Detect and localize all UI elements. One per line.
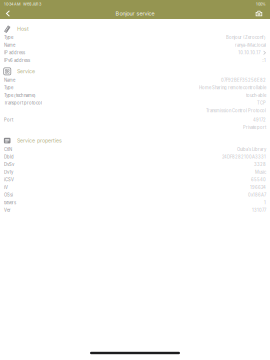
staticText: Port bbox=[4, 117, 13, 122]
staticText: Ver bbox=[4, 208, 11, 213]
staticText: DbId bbox=[4, 154, 14, 159]
staticText: Home Sharing remote controllable bbox=[199, 85, 266, 90]
staticText: Service properties bbox=[17, 137, 62, 144]
staticText: ::1 bbox=[262, 58, 266, 63]
staticText: Bonjour service bbox=[115, 10, 154, 17]
staticText: 131077 bbox=[252, 208, 266, 213]
staticText: ranya-iMac.local bbox=[235, 43, 266, 48]
staticText: TCP bbox=[257, 100, 266, 106]
staticText: Ouiba's Library bbox=[237, 147, 266, 152]
staticText: Name bbox=[4, 43, 15, 48]
staticText: touch-able bbox=[246, 93, 266, 98]
button[interactable]: IP address bbox=[0, 49, 270, 56]
staticText: Transport protocol bbox=[4, 100, 42, 106]
staticText: DvTy bbox=[4, 170, 13, 175]
staticText: 10:34 AM Wed Jun 3 bbox=[4, 2, 41, 6]
button[interactable]: Scan for services bbox=[254, 8, 264, 18]
staticText: 1 bbox=[264, 200, 266, 205]
staticText: Type (tech name) bbox=[4, 93, 36, 98]
staticText: OSsi bbox=[4, 192, 13, 198]
staticText: Host bbox=[17, 25, 29, 32]
staticText: 49172 bbox=[253, 117, 266, 122]
staticText: 10.10.10.17 bbox=[238, 50, 260, 55]
staticText: 3328 bbox=[254, 162, 266, 167]
staticText: 0x186A7 bbox=[248, 192, 266, 198]
staticText: 100% bbox=[256, 2, 266, 6]
staticText: Type bbox=[4, 35, 13, 40]
staticText: iCSV bbox=[4, 177, 14, 182]
staticText: Transmission Control Protocol bbox=[206, 108, 266, 113]
button[interactable]: Back bbox=[3, 8, 13, 18]
staticText: 07F92BEF35256E82 bbox=[221, 78, 266, 83]
staticText: Service bbox=[17, 68, 35, 75]
staticText: Private port bbox=[243, 125, 266, 130]
staticText: 65540 bbox=[251, 177, 266, 182]
staticText: Type bbox=[4, 85, 13, 90]
staticText: Name bbox=[4, 78, 15, 83]
staticText: DvSv bbox=[4, 162, 14, 167]
staticText: 196624 bbox=[250, 185, 266, 190]
staticText: IPv6 address bbox=[4, 58, 30, 63]
staticText: Bonjour (Zeroconf) bbox=[226, 35, 266, 40]
staticText: Music bbox=[255, 170, 266, 175]
staticText: txtvers bbox=[4, 200, 16, 205]
staticText: CtlN bbox=[4, 147, 12, 152]
staticText: 24DF8282100A3331 bbox=[222, 154, 266, 159]
staticText: IP address bbox=[4, 50, 25, 55]
staticText: iV bbox=[4, 185, 8, 190]
